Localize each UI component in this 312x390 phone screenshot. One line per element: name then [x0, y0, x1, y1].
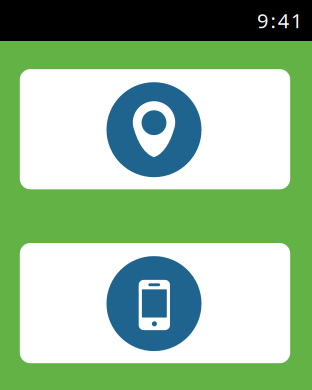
button[interactable]: Phone [20, 243, 290, 363]
staticText: 9:41 [257, 7, 302, 34]
button[interactable]: Location [20, 69, 290, 189]
